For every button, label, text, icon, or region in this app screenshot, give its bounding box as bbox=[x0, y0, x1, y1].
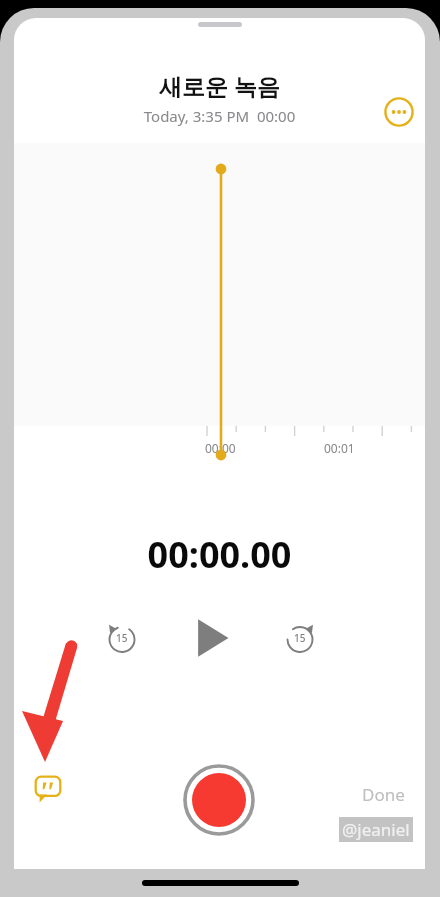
button[interactable]: Record bbox=[183, 764, 255, 836]
staticText: 00:01 bbox=[324, 440, 355, 456]
button[interactable]: Skip back 15 seconds bbox=[96, 612, 148, 664]
staticText: 00:00.00 bbox=[14, 530, 425, 579]
button[interactable]: More options bbox=[383, 96, 415, 128]
button[interactable]: Play bbox=[178, 607, 244, 669]
staticText: 00:00 bbox=[205, 440, 236, 456]
button[interactable]: Transcript bbox=[30, 771, 66, 807]
staticText: 15 bbox=[294, 631, 306, 645]
staticText: @jeaniel bbox=[342, 818, 410, 841]
button[interactable]: Skip forward 15 seconds bbox=[274, 612, 326, 664]
staticText: 새로운 녹음 bbox=[14, 70, 425, 101]
staticText: Today, 3:35 PM 00:00 bbox=[14, 106, 425, 126]
staticText: Done bbox=[362, 783, 405, 806]
button[interactable]: Done bbox=[358, 779, 409, 810]
staticText: 15 bbox=[116, 631, 128, 645]
